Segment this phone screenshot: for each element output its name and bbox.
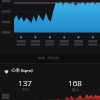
staticText: 平均 <box>22 88 29 92</box>
staticText: 最大 <box>72 88 79 92</box>
staticText: 配速（分/公里） <box>38 56 62 60</box>
staticText: 心率 (bpm) <box>11 68 33 74</box>
button[interactable] <box>0 0 100 54</box>
button[interactable]: Heart rate <box>0 64 100 100</box>
other: Heart rate <box>4 69 9 74</box>
staticText: 137 <box>18 77 32 88</box>
staticText: 168 <box>68 77 82 88</box>
